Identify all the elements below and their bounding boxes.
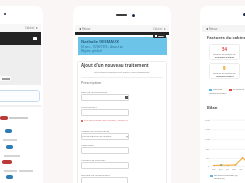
button[interactable] [6,145,41,149]
button[interactable]: Cabinet [25,26,38,30]
button[interactable] [81,177,128,183]
button[interactable] [81,162,129,169]
staticText: Juil [226,168,229,171]
button[interactable]: Nathalie DESMAUX [78,37,167,55]
button[interactable] [0,76,11,81]
staticText: Nathalie DESMAUX [81,39,119,44]
button[interactable]: Menu [0,32,41,45]
staticText: 1 500 [205,128,210,131]
staticText: Les champs marqués d'un étoile * sont ob… [94,71,150,74]
button[interactable]: AIDE [153,34,166,38]
staticText: Factures [213,88,223,91]
other: Menu [33,37,37,40]
staticText: Retour [82,27,91,31]
button[interactable]: Retour [206,27,218,31]
staticText: Régime général [81,49,102,53]
staticText: Nombre de séances* [81,158,106,161]
button[interactable]: Pick date [81,94,129,101]
staticText: Recettes encaissées (€) [214,174,238,177]
button[interactable]: 9 [209,63,240,79]
staticText: AIDE [158,35,164,38]
staticText: Juin [219,168,223,171]
staticText: Prescription [81,80,102,85]
button[interactable]: 54 [209,44,240,60]
staticText: Origine de l'ordonnance [81,129,110,132]
staticText: En attente [233,88,245,91]
staticText: Ajout d'un nouveau traitement [81,62,149,68]
staticText: 1 000 [205,138,210,141]
staticText: 0 [208,165,210,168]
button[interactable] [0,116,41,120]
button[interactable]: Cabinet [153,27,166,31]
staticText: Pathologie [81,143,94,146]
staticText: facturé (€) [214,177,225,180]
staticText: Pas de mention de l'origine [82,135,112,138]
staticText: 63 ans – 15/06/1959 – Assuré au [81,45,124,49]
staticText: Cabinet [153,27,163,31]
button[interactable] [0,90,40,102]
staticText: Si le prescripteur est nouveau, cliquez … [84,119,128,122]
staticText: paiement patient [215,56,235,59]
staticText: Prescripteur* [81,105,97,108]
button[interactable]: Retour [79,27,91,31]
staticText: 54 [222,46,228,52]
button[interactable] [5,129,41,133]
staticText: remboursement [216,75,234,78]
button[interactable] [2,160,41,164]
button[interactable]: Pas de mention de l'origine [81,133,129,140]
staticText: Résumé de l'ordonnance [81,173,110,176]
button[interactable] [81,109,129,116]
button[interactable] [81,147,129,154]
staticText: Mar [212,168,216,171]
staticText: Bilan [207,105,218,111]
staticText: factures en attente de [213,72,236,75]
staticText: 9 [223,65,226,71]
staticText: 2 000 [205,119,210,122]
staticText: Retour [209,27,218,31]
staticText: remboursement [209,92,227,95]
staticText: Sept [232,168,236,171]
staticText: Date de l'ordonnance* [81,90,108,93]
staticText: 150 [206,157,210,160]
staticText: factures en attente de [213,53,236,56]
staticText: Cabinet [25,26,35,30]
staticText: 500 [206,148,210,151]
button[interactable] [6,175,41,179]
staticText: Nov [239,168,243,171]
staticText: Factures du cabinet pour le [207,35,245,41]
